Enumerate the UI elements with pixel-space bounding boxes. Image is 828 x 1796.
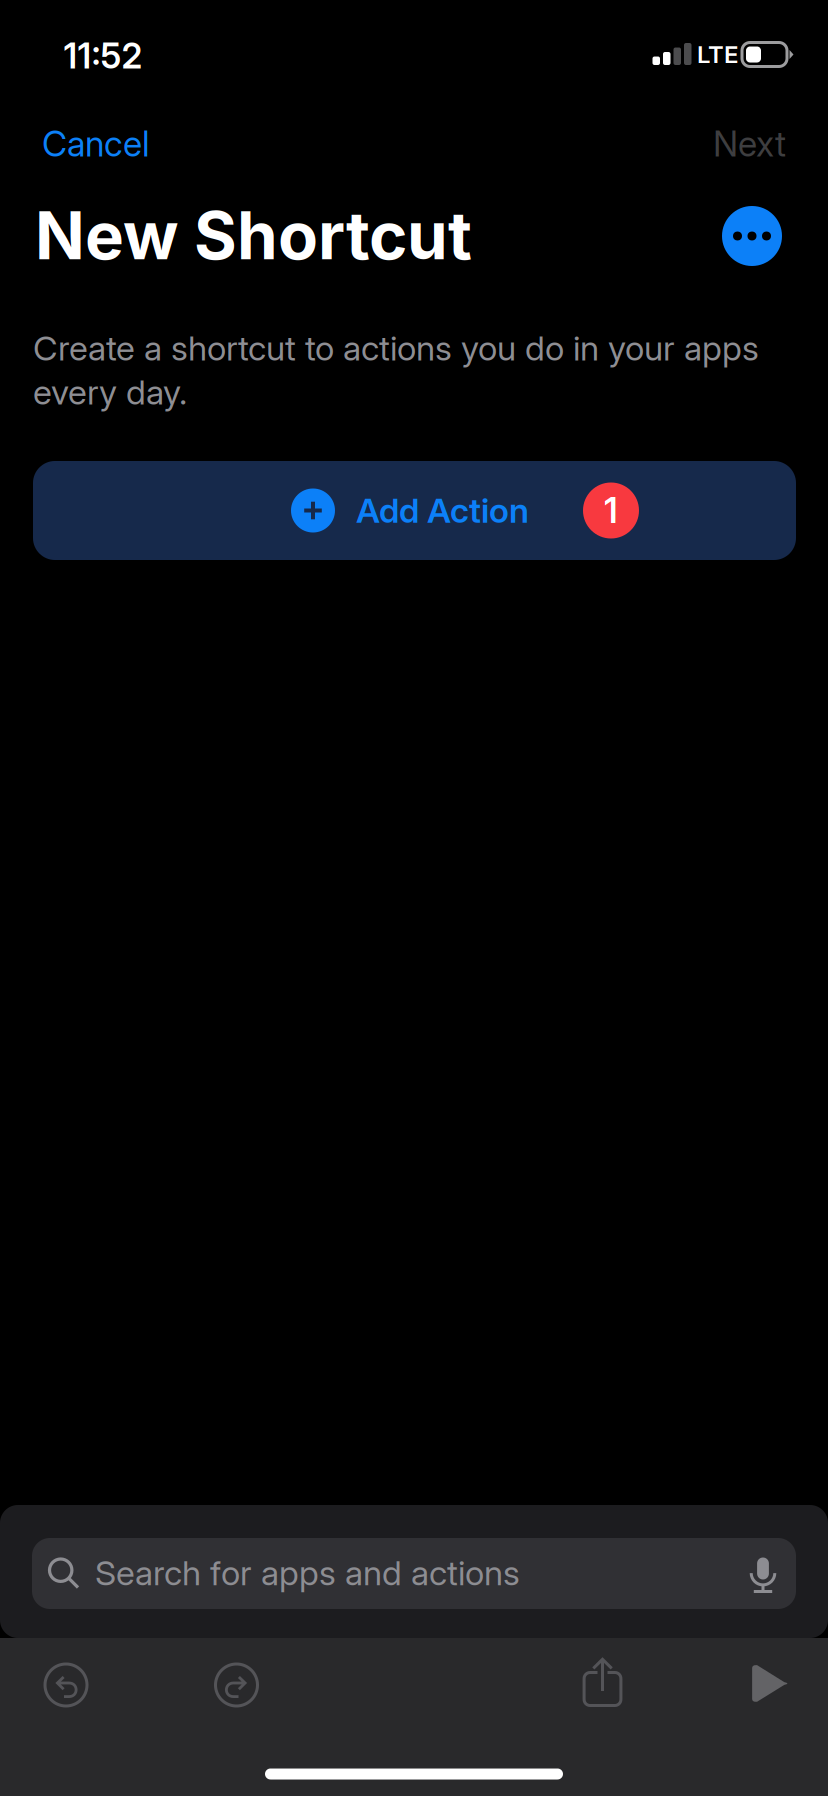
button[interactable]: Share: [558, 1639, 646, 1727]
button[interactable]: Shortcut details: [708, 192, 796, 280]
staticText: LTE: [697, 40, 738, 69]
staticText: Search for apps and actions: [95, 1552, 520, 1593]
button[interactable]: Cancel: [42, 106, 170, 182]
button[interactable]: Run shortcut: [726, 1639, 814, 1727]
staticText: New Shortcut: [35, 196, 472, 275]
staticText: Next: [713, 123, 786, 165]
button[interactable]: Undo: [22, 1641, 110, 1729]
button[interactable]: Search for apps and actions: [32, 1538, 796, 1609]
staticText: Cancel: [42, 123, 150, 165]
staticText: Create a shortcut to actions you do in y…: [33, 327, 759, 413]
button[interactable]: Add Action: [33, 461, 796, 560]
staticText: 1: [604, 489, 618, 531]
button[interactable]: Redo: [192, 1641, 280, 1729]
staticText: 11:52: [63, 35, 142, 77]
staticText: Add Action: [356, 490, 529, 531]
button[interactable]: Next: [676, 106, 786, 182]
